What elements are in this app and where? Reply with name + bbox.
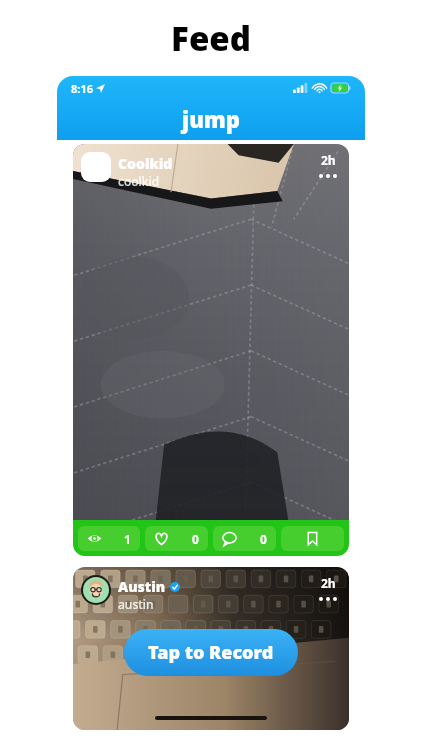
button[interactable]: Coolkid bbox=[73, 144, 349, 556]
button[interactable] bbox=[81, 575, 111, 605]
staticText: coolkid bbox=[118, 173, 160, 189]
button[interactable]: Save bbox=[281, 526, 344, 551]
button[interactable]: Likes bbox=[145, 526, 208, 551]
staticText: 0 bbox=[192, 531, 199, 547]
button[interactable]: More options bbox=[317, 172, 339, 180]
staticText: jump bbox=[182, 104, 241, 134]
staticText: Austin bbox=[118, 577, 166, 596]
staticText: Tap to Record bbox=[148, 640, 274, 665]
button[interactable] bbox=[81, 152, 111, 182]
staticText: 2h bbox=[321, 575, 336, 591]
staticText: 0 bbox=[260, 531, 267, 547]
button[interactable]: Tap to Record bbox=[124, 629, 298, 676]
staticText: 2h bbox=[321, 152, 336, 168]
staticText: austin bbox=[118, 596, 154, 612]
staticText: Coolkid bbox=[118, 154, 173, 173]
button[interactable]: Views bbox=[78, 526, 140, 551]
button[interactable]: Austin bbox=[73, 567, 349, 730]
staticText: 1 bbox=[124, 531, 131, 547]
staticText: 8:16 bbox=[71, 81, 93, 96]
staticText: Feed bbox=[0, 16, 422, 61]
button[interactable]: Comments bbox=[213, 526, 276, 551]
button[interactable]: More options bbox=[317, 595, 339, 603]
